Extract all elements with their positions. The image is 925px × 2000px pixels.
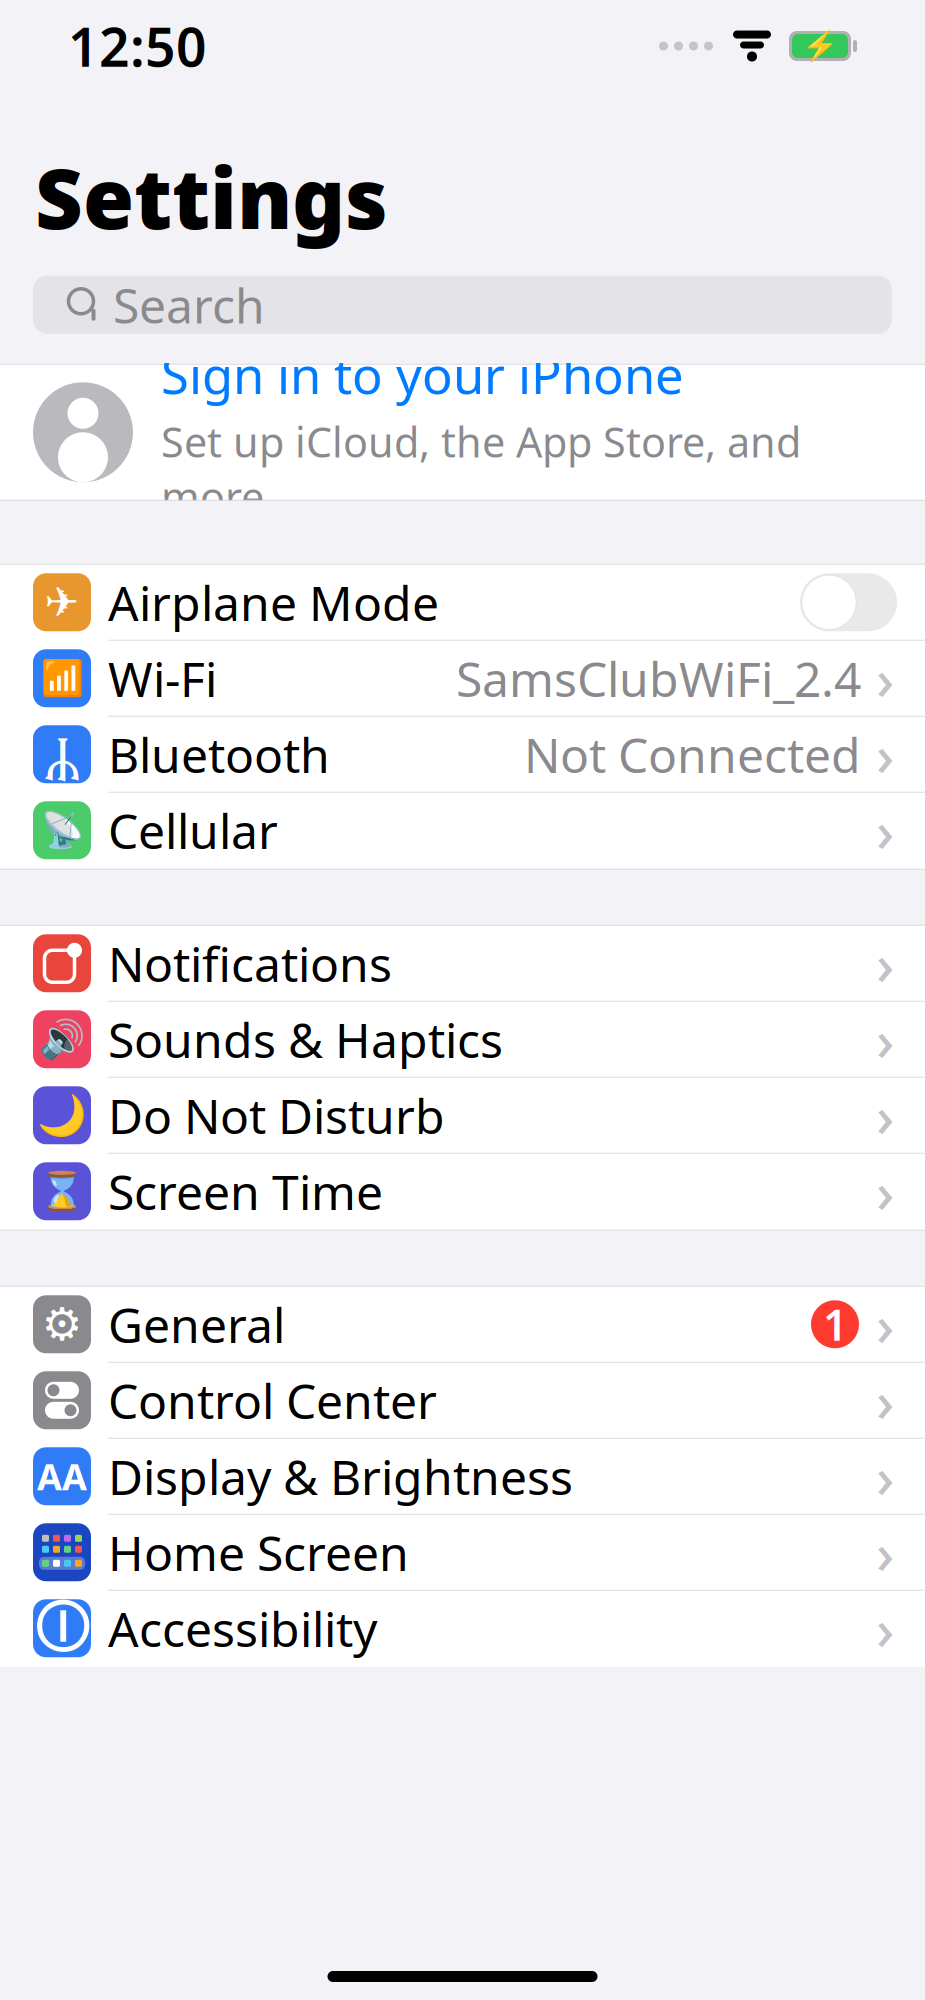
staticText: SamsClubWiFi_2.4 <box>456 646 861 710</box>
staticText: Control Center <box>108 1368 437 1432</box>
staticText: › <box>876 1439 894 1513</box>
button[interactable]: Sign in to your iPhone <box>0 365 925 500</box>
staticText: › <box>876 926 894 1000</box>
button[interactable]: 📡 <box>0 793 925 869</box>
staticText: › <box>876 1002 894 1076</box>
staticText: Ⓘ <box>35 1595 88 1661</box>
staticText: ⌛ <box>39 1170 85 1213</box>
staticText: Screen Time <box>108 1159 383 1223</box>
staticText: Cellular <box>108 798 278 862</box>
staticText: 🌙 <box>37 1092 87 1138</box>
button[interactable]: ᛦ <box>0 717 925 793</box>
staticText: Sounds & Haptics <box>108 1007 503 1071</box>
staticText: 📶 <box>40 658 83 698</box>
staticText: ✈ <box>44 579 79 626</box>
staticText: Accessibility <box>108 1596 377 1660</box>
staticText: › <box>876 1591 894 1665</box>
button[interactable]: Home Screen <box>0 1515 925 1591</box>
staticText: Not Connected <box>524 722 861 786</box>
staticText: › <box>876 793 894 867</box>
staticText: › <box>876 1154 894 1228</box>
button[interactable]: 📶 <box>0 641 925 717</box>
staticText: › <box>876 1287 894 1361</box>
button[interactable]: ✈ <box>0 565 925 641</box>
staticText: › <box>876 717 894 791</box>
staticText: General <box>108 1292 285 1356</box>
staticText: › <box>876 641 894 715</box>
staticText: AA <box>37 1452 87 1500</box>
staticText: Home Screen <box>108 1520 409 1584</box>
button[interactable]: 🔊 <box>0 1002 925 1078</box>
staticText: Do Not Disturb <box>108 1083 445 1147</box>
staticText: ⚙ <box>41 1299 82 1350</box>
staticText: Set up iCloud, the App Store, and more. <box>161 414 801 524</box>
button[interactable]: ⓛ <box>33 276 892 334</box>
staticText: 1 <box>823 1296 847 1353</box>
button[interactable]: ⚙ <box>0 1287 925 1363</box>
button[interactable]: Ⓘ <box>0 1591 925 1667</box>
staticText: ⚡ <box>801 29 838 63</box>
button[interactable]: Notifications <box>0 926 925 1002</box>
button[interactable]: ⌛ <box>0 1154 925 1230</box>
staticText: Sign in to your iPhone <box>161 341 684 408</box>
staticText: › <box>876 1515 894 1589</box>
button[interactable]: 🌙 <box>0 1078 925 1154</box>
button[interactable]: AA <box>0 1439 925 1515</box>
staticText: Airplane Mode <box>108 570 439 634</box>
staticText: Bluetooth <box>108 722 330 786</box>
staticText: Settings <box>35 142 388 252</box>
staticText: › <box>876 1078 894 1152</box>
staticText: 12:50 <box>68 11 207 81</box>
staticText: ᛦ <box>44 726 79 783</box>
staticText: › <box>876 1363 894 1437</box>
staticText: Search <box>113 273 265 337</box>
staticText: Notifications <box>108 931 392 995</box>
button[interactable]: Control Center <box>0 1363 925 1439</box>
staticText: 🔊 <box>39 1018 85 1061</box>
staticText: 📡 <box>40 810 83 850</box>
staticText: Wi-Fi <box>108 646 217 710</box>
staticText: Display & Brightness <box>108 1444 573 1508</box>
